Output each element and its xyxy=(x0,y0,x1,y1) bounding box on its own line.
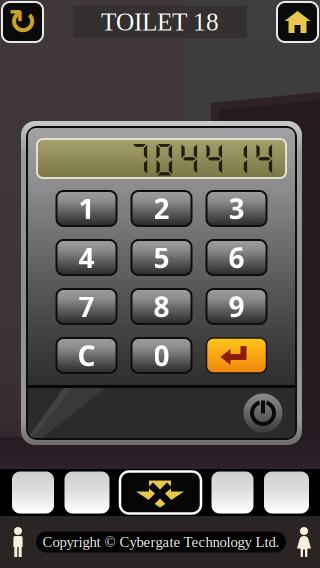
staticText: 6 xyxy=(228,239,244,276)
button[interactable]: Enter xyxy=(206,338,266,373)
button[interactable]: C xyxy=(56,338,116,373)
button[interactable]: Empty item slot xyxy=(64,471,109,513)
button[interactable]: Close item xyxy=(120,471,201,513)
staticText: Copyright © Cybergate Technology Ltd. xyxy=(42,534,279,550)
staticText: 5 xyxy=(153,239,169,276)
staticText: 1 xyxy=(78,190,94,227)
button[interactable]: Home xyxy=(277,2,318,42)
staticText: 7 xyxy=(78,288,94,325)
button[interactable]: Empty item slot xyxy=(264,471,309,513)
button[interactable]: 7 xyxy=(56,289,116,324)
staticText: TOILET 18 xyxy=(101,8,219,36)
button[interactable]: 3 xyxy=(206,191,266,226)
button[interactable]: 1 xyxy=(56,191,116,226)
staticText: 2 xyxy=(153,190,169,227)
button[interactable]: Power xyxy=(243,392,283,434)
staticText: 3 xyxy=(228,190,244,227)
button[interactable]: 5 xyxy=(131,240,191,275)
button[interactable]: 6 xyxy=(206,240,266,275)
staticText: C xyxy=(77,337,95,374)
staticText: 704414 xyxy=(127,139,277,178)
staticText: 8 xyxy=(153,288,169,325)
staticText: 0 xyxy=(153,337,169,374)
staticText: 9 xyxy=(228,288,244,325)
button[interactable]: 0 xyxy=(131,338,191,373)
button[interactable]: 8 xyxy=(131,289,191,324)
button[interactable]: Empty item slot xyxy=(211,471,253,513)
staticText: ↻ xyxy=(8,2,37,42)
button[interactable]: Empty item slot xyxy=(12,471,54,513)
staticText: 4 xyxy=(78,239,94,276)
button[interactable]: 2 xyxy=(131,191,191,226)
button[interactable]: 9 xyxy=(206,289,266,324)
button[interactable]: 4 xyxy=(56,240,116,275)
button[interactable]: Restart xyxy=(2,2,43,42)
